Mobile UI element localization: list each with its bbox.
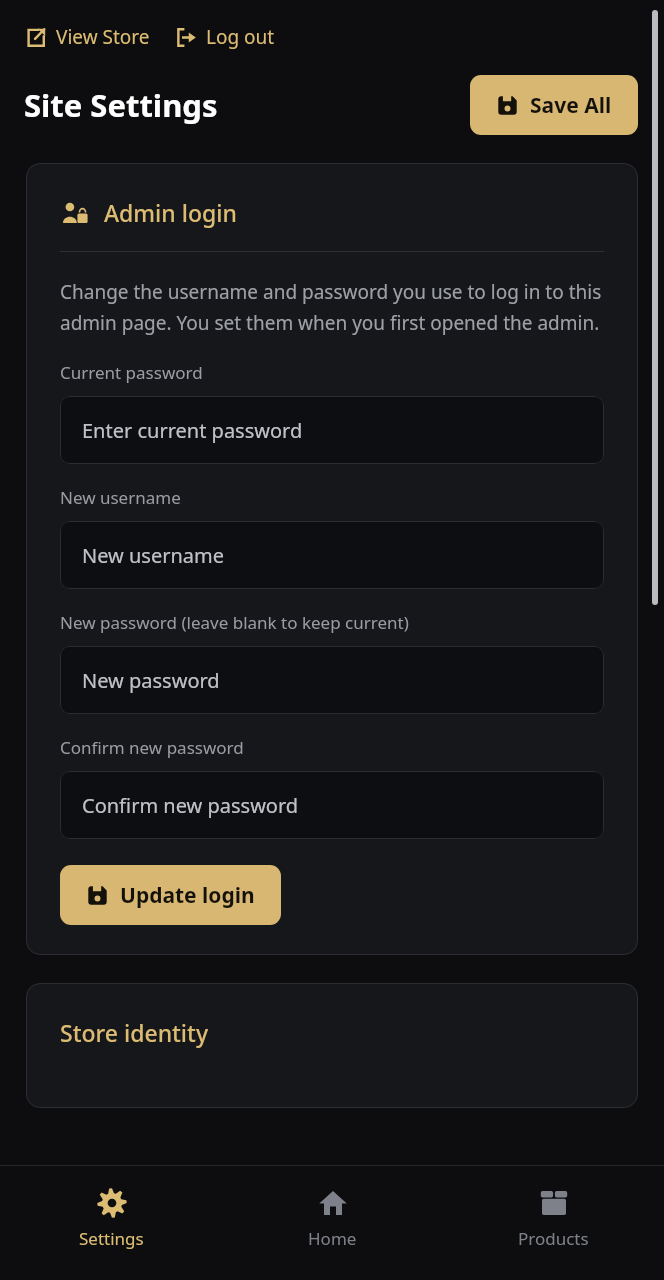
staticText: New username [60, 486, 181, 509]
staticText: Enter current password [82, 417, 303, 444]
staticText: Confirm new password [82, 792, 299, 819]
button[interactable]: Update login [60, 865, 281, 925]
staticText: Save All [530, 91, 612, 120]
button[interactable]: Enter current password [60, 396, 604, 464]
button[interactable]: Save All [470, 75, 638, 135]
button[interactable]: Settings [79, 1166, 144, 1280]
button[interactable]: Home [308, 1166, 357, 1280]
button[interactable]: Confirm new password [60, 771, 604, 839]
staticText: Admin login [104, 197, 237, 228]
button[interactable]: Log out [172, 20, 277, 54]
staticText: Confirm new password [60, 736, 244, 759]
button[interactable]: New password [60, 646, 604, 714]
staticText: New password (leave blank to keep curren… [60, 611, 409, 634]
staticText: Home [308, 1227, 357, 1250]
staticText: Change the username and password you use… [60, 279, 604, 335]
staticText: Site Settings [24, 84, 218, 126]
staticText: View Store [56, 24, 150, 50]
staticText: New password [82, 667, 220, 694]
staticText: Current password [60, 361, 203, 384]
staticText: Settings [79, 1227, 144, 1250]
staticText: Log out [206, 24, 275, 50]
staticText: Update login [120, 881, 255, 910]
button[interactable]: Products [518, 1166, 589, 1280]
button[interactable]: View Store [22, 20, 152, 54]
staticText: Store identity [60, 1017, 209, 1048]
button[interactable]: New username [60, 521, 604, 589]
staticText: New username [82, 542, 225, 569]
staticText: Products [518, 1227, 589, 1250]
